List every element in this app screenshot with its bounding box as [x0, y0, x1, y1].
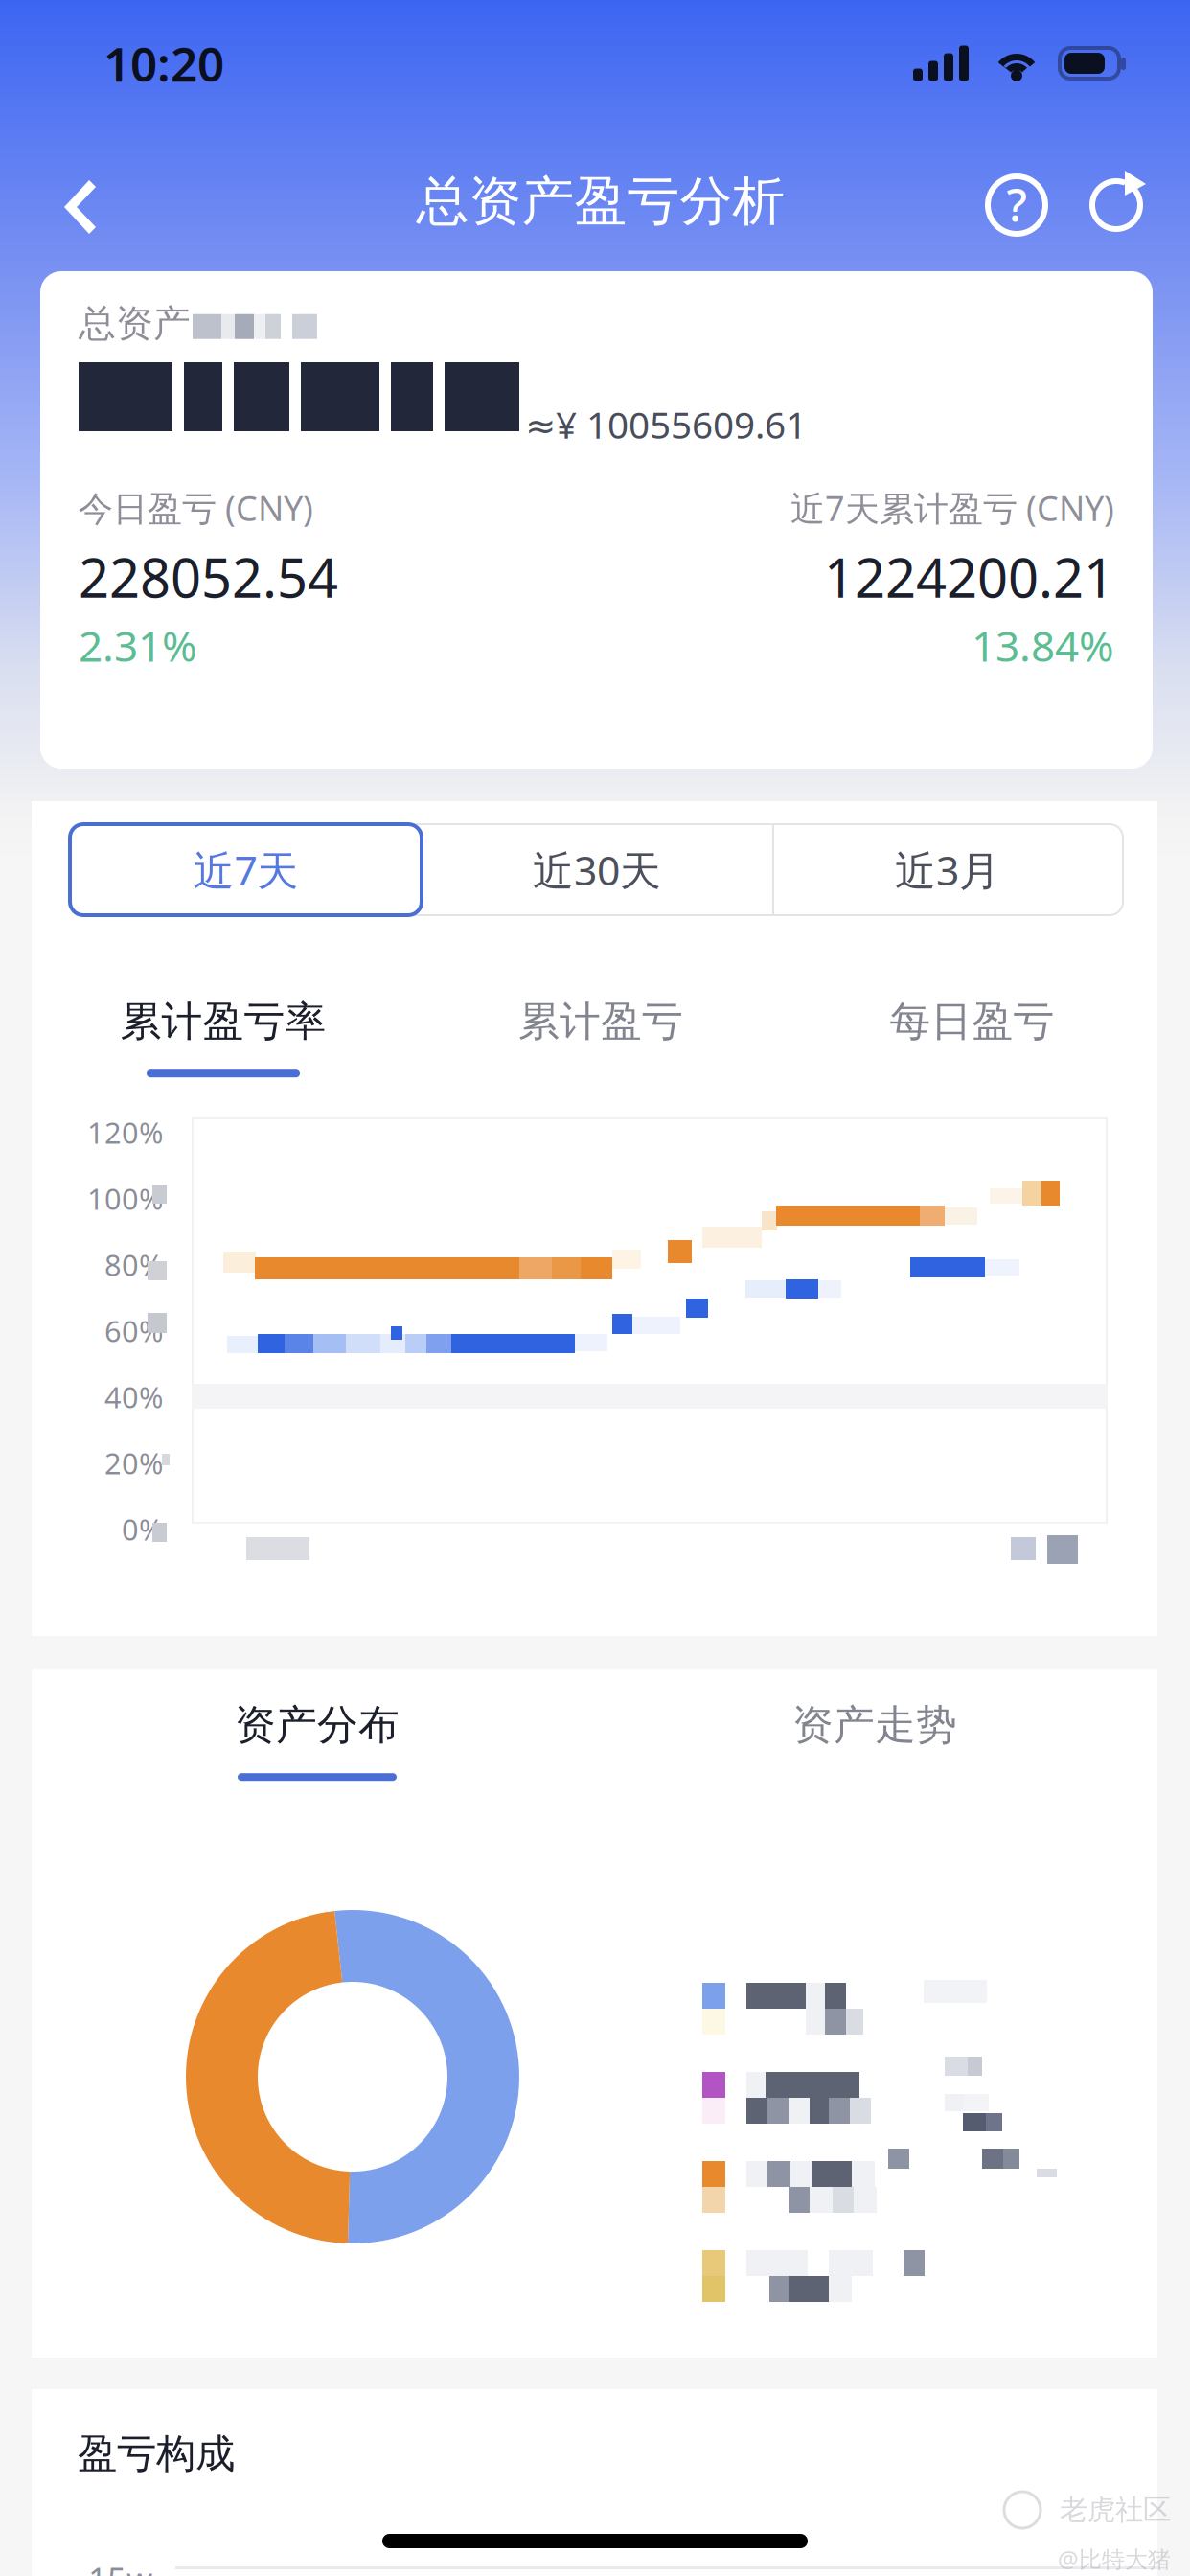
staticText: 20% [104, 1443, 163, 1482]
staticText: 总资产 [79, 301, 191, 346]
button[interactable]: Help [975, 169, 1058, 241]
staticText: @比特大猪 [1058, 2543, 1171, 2574]
staticText: 资产分布 [235, 1700, 400, 1750]
staticText: 近7天累计盈亏 (CNY) [790, 485, 1114, 531]
button[interactable]: 资产分布 [39, 1692, 595, 1788]
staticText: 0% [122, 1509, 163, 1548]
button[interactable]: 资产走势 [595, 1692, 1155, 1788]
staticText: 10:20 [103, 32, 224, 95]
staticText: 15w [88, 2557, 152, 2576]
staticText: 每日盈亏 [890, 996, 1054, 1047]
staticText: ? [1007, 174, 1027, 235]
staticText: 13.84% [972, 617, 1114, 673]
staticText: 近7天 [193, 843, 298, 897]
staticText: 1224200.21 [824, 541, 1114, 613]
button[interactable]: 每日盈亏 [787, 989, 1157, 1085]
button[interactable]: Back [28, 171, 133, 243]
staticText: 100% [87, 1179, 163, 1218]
staticText: 60% [104, 1311, 163, 1350]
staticText: 盈亏构成 [78, 2429, 235, 2478]
staticText: 40% [104, 1377, 163, 1416]
staticText: 近3月 [895, 843, 1000, 897]
button[interactable]: 累计盈亏率 [32, 989, 415, 1085]
button[interactable]: 近3月 [772, 824, 1123, 915]
staticText: 总资产盈亏分析 [416, 169, 785, 233]
staticText: 228052.54 [79, 541, 338, 613]
staticText: 2.31% [79, 617, 197, 673]
button[interactable]: Refresh [1075, 167, 1157, 240]
button[interactable]: 近30天 [422, 824, 772, 915]
staticText: 资产走势 [792, 1700, 957, 1750]
staticText: 80% [104, 1245, 163, 1284]
staticText: 累计盈亏 [518, 996, 683, 1047]
staticText: ≈¥ 10055609.61 [525, 400, 807, 449]
staticText: 老虎社区 [1060, 2493, 1171, 2527]
staticText: 累计盈亏率 [120, 996, 326, 1047]
staticText: 120% [87, 1113, 163, 1152]
staticText: 近30天 [533, 843, 661, 897]
staticText: 今日盈亏 (CNY) [79, 485, 313, 531]
button[interactable]: 近7天 [70, 824, 422, 915]
button[interactable]: 累计盈亏 [415, 989, 787, 1085]
